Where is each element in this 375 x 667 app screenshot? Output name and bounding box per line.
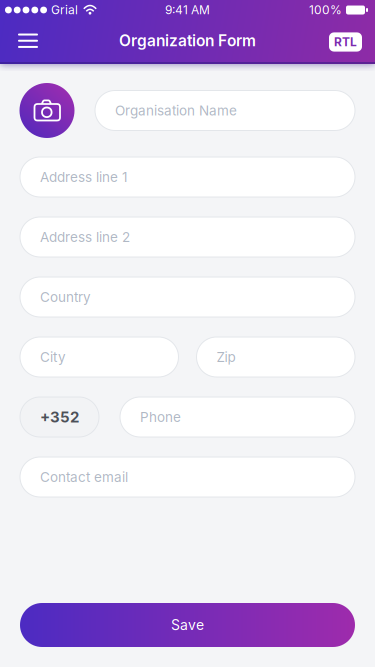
staticText: 9:41 AM <box>165 3 210 17</box>
button[interactable]: Address line 1 <box>20 157 355 197</box>
staticText: Address line 1 <box>40 169 127 185</box>
button[interactable]: Menu <box>8 24 48 60</box>
button[interactable]: Organisation Name <box>95 90 355 130</box>
staticText: Grial <box>51 3 78 17</box>
button[interactable]: Save <box>20 603 355 647</box>
staticText: Zip <box>216 349 235 365</box>
staticText: Phone <box>140 409 181 425</box>
staticText: Organization Form <box>119 31 256 50</box>
staticText: Save <box>171 617 204 633</box>
button[interactable]: Add organisation photo <box>19 83 74 138</box>
staticText: +352 <box>40 408 79 426</box>
button[interactable]: Toggle right-to-left layout <box>329 32 362 52</box>
staticText: Address line 2 <box>40 229 130 245</box>
button[interactable]: Zip <box>196 337 355 377</box>
button[interactable]: Phone <box>120 397 355 437</box>
button[interactable]: Country code +352 <box>20 397 99 437</box>
button[interactable]: Contact email <box>20 457 355 497</box>
staticText: Country <box>40 289 91 305</box>
staticText: City <box>40 349 66 365</box>
button[interactable]: City <box>20 337 178 377</box>
staticText: 100% <box>309 3 342 17</box>
staticText: Contact email <box>40 469 128 485</box>
button[interactable]: Country <box>20 277 355 317</box>
staticText: RTL <box>334 35 357 49</box>
staticText: Organisation Name <box>115 102 237 118</box>
button[interactable]: Address line 2 <box>20 217 355 257</box>
